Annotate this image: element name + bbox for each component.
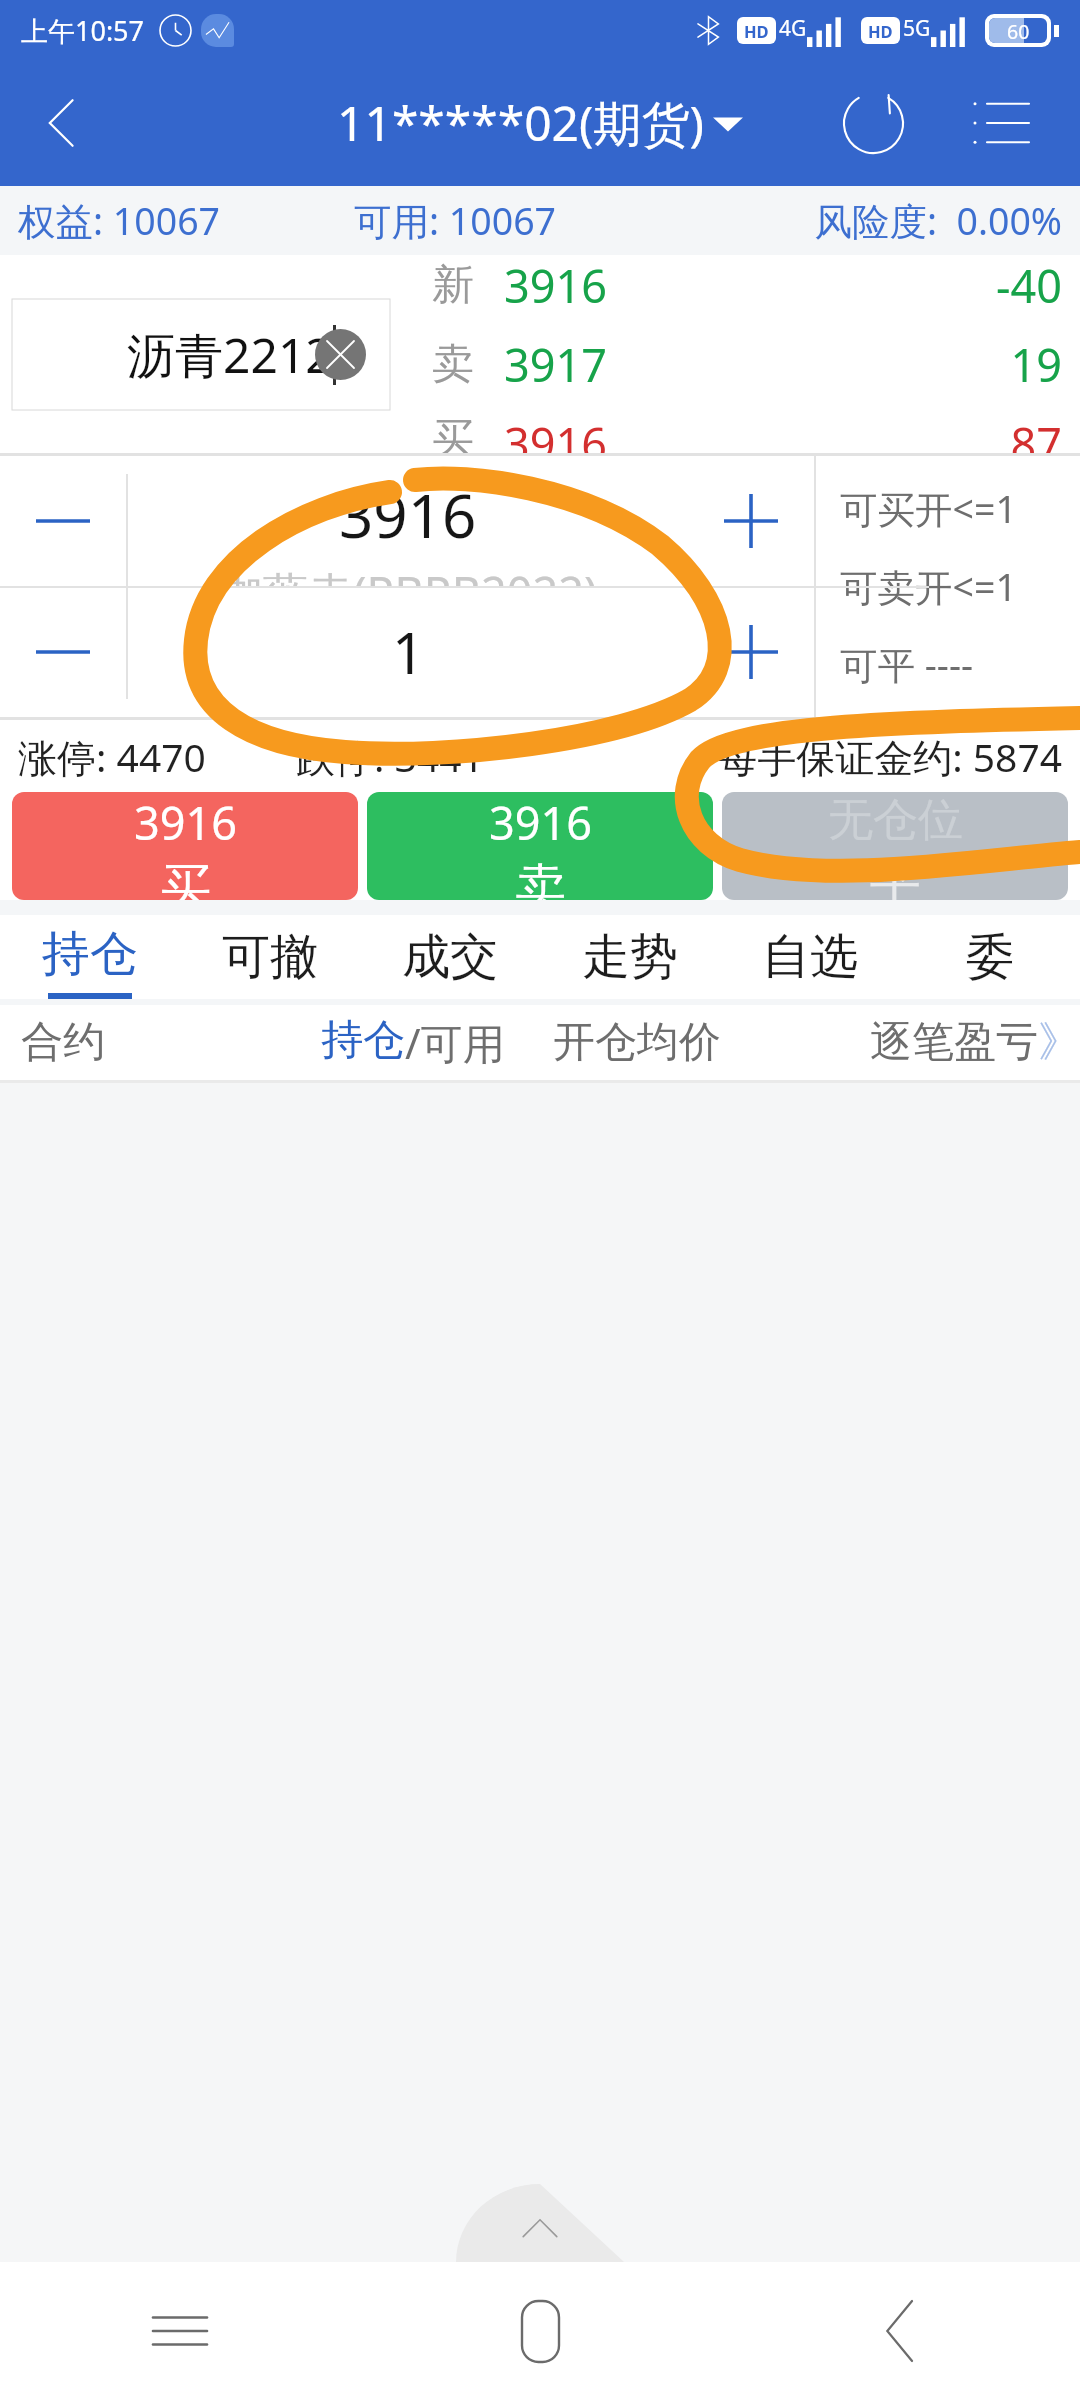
staticText: 买 [432,413,474,453]
button[interactable]: 可撤 [180,915,360,999]
staticText: 跌停: 3441 [296,730,484,783]
button[interactable]: 11*****02(期货) [337,90,743,156]
button[interactable]: 沥青2212 [12,299,390,410]
button[interactable]: Increase quantity [688,586,814,717]
staticText: 卖 [515,856,566,900]
staticText: 开仓均价 [553,1016,721,1069]
staticText: 3917 [504,334,607,395]
button[interactable]: Back [720,2262,1080,2400]
staticText: 可撤 [222,927,318,987]
staticText: 19 [607,334,1062,395]
staticText: 3916 [489,792,592,853]
staticText: 3916 [134,792,237,853]
staticText: 可用: 10067 [354,195,708,246]
staticText: 60 [1007,18,1030,43]
staticText: 3916 [504,255,607,316]
staticText: 可卖开<=1 [840,561,1017,612]
staticText: 沥青2212 [127,322,333,388]
staticText: HD [744,20,769,42]
button[interactable]: Refresh [810,60,936,186]
staticText: -40 [607,255,1062,316]
staticText: /可用 [405,1014,505,1071]
staticText: 》 [1038,1016,1080,1069]
button[interactable]: Clear [315,329,366,380]
button[interactable]: 走势 [540,915,720,999]
button[interactable]: 无仓位 [722,792,1068,900]
staticText: 87 [607,413,1062,453]
button[interactable]: 1 [128,586,688,717]
staticText: 4G [779,14,807,43]
staticText: HD [868,20,893,42]
button[interactable]: Increase price [688,456,814,586]
button[interactable]: Back [0,60,126,186]
staticText: 合约 [21,1016,321,1069]
staticText: 权益: 10067 [18,195,354,246]
staticText: 珈薇幸(RBRB2022) [218,562,598,586]
staticText: 无仓位 [828,792,963,849]
staticText: 平 [870,852,921,900]
staticText: 上午10:57 [21,12,145,49]
staticText: 新 [432,259,474,312]
button[interactable]: 成交 [360,915,540,999]
button[interactable]: Menu [936,60,1062,186]
staticText: 涨停: 4470 [18,730,206,783]
button[interactable]: Decrease quantity [0,586,126,717]
staticText: 3916 [504,413,607,453]
staticText: 自选 [762,927,858,987]
staticText: 卖 [432,338,474,391]
staticText: 可买开<=1 [840,483,1017,534]
staticText: 11*****02(期货) [337,90,704,156]
staticText: 成交 [402,927,498,987]
button[interactable]: 3916 [367,792,713,900]
button[interactable]: Decrease price [0,456,126,586]
button[interactable]: 委 [900,915,1080,999]
button[interactable]: 自选 [720,915,900,999]
staticText: 持仓 [42,924,138,984]
staticText: 逐笔盈亏 [870,1016,1038,1069]
button[interactable]: Recents [0,2262,360,2400]
staticText: 委 [966,927,1014,987]
staticText: 持仓 [321,1014,405,1067]
button[interactable]: Home [360,2262,720,2400]
staticText: 1 [392,613,425,691]
staticText: 买 [160,856,211,900]
staticText: 风险度: 0.00% [708,195,1062,246]
button[interactable]: 3916 [128,456,688,586]
button[interactable]: 持仓 [0,915,180,999]
button[interactable]: 3916 [12,792,358,900]
staticText: 3916 [339,474,477,556]
staticText: 走势 [582,927,678,987]
staticText: 5G [903,14,931,43]
staticText: 可平 ---- [840,639,974,690]
staticText: 每手保证金约: 5874 [484,730,1062,783]
